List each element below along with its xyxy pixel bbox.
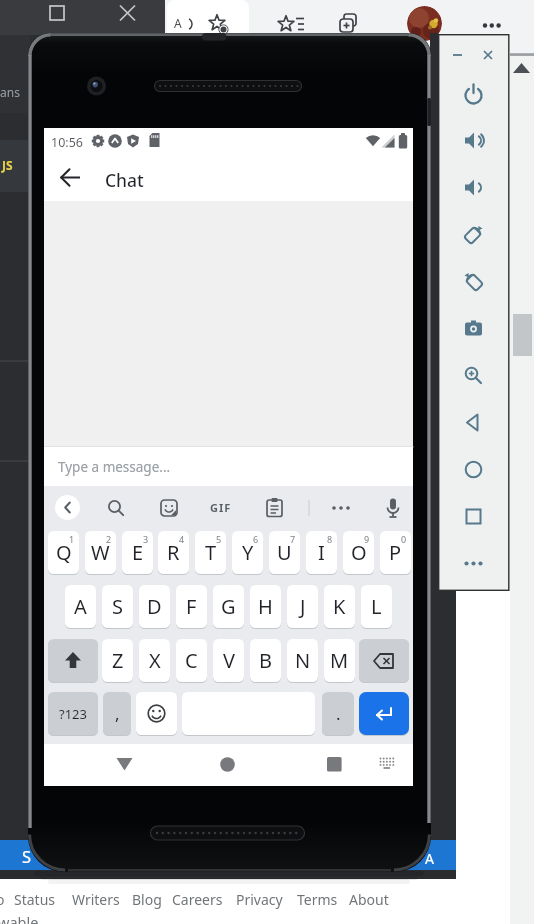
button[interactable]: Z [102, 639, 133, 682]
button[interactable] [160, 499, 178, 517]
button[interactable] [463, 553, 484, 574]
button[interactable]: M [324, 639, 355, 682]
staticText: , [115, 702, 120, 725]
button[interactable]: Q [48, 531, 79, 574]
button[interactable]: V [213, 639, 244, 682]
staticText: Y [242, 539, 254, 566]
button[interactable] [55, 495, 80, 520]
button[interactable] [480, 21, 506, 31]
button[interactable]: U [269, 531, 300, 574]
button[interactable] [463, 506, 484, 527]
button[interactable] [44, 447, 413, 486]
staticText: 0 [401, 533, 407, 545]
staticText: H [258, 593, 273, 620]
staticText: I [318, 539, 325, 566]
button[interactable] [407, 6, 442, 41]
button[interactable] [482, 49, 494, 61]
button[interactable]: H [250, 585, 281, 628]
button[interactable] [463, 318, 484, 339]
button[interactable] [359, 692, 409, 735]
button[interactable] [266, 498, 283, 517]
button[interactable]: Y [232, 531, 263, 574]
staticText: o [0, 890, 5, 909]
button[interactable] [463, 271, 484, 292]
button[interactable]: I [306, 531, 337, 574]
staticText: . [336, 702, 341, 725]
staticText: C [185, 647, 198, 674]
staticText: E [132, 539, 144, 566]
button[interactable] [107, 499, 125, 517]
staticText: G [221, 593, 236, 620]
button[interactable]: B [250, 639, 281, 682]
button[interactable] [512, 62, 531, 76]
button[interactable]: K [324, 585, 355, 628]
staticText: Privacy [236, 890, 283, 909]
button[interactable]: L [361, 585, 392, 628]
staticText: N [295, 647, 311, 674]
staticText: P [389, 539, 402, 566]
button[interactable] [463, 224, 484, 245]
button[interactable] [276, 13, 308, 39]
button[interactable]: S [102, 585, 133, 628]
staticText: Blog [132, 890, 162, 909]
staticText: 5 [216, 533, 222, 545]
button[interactable] [463, 412, 484, 433]
button[interactable]: E [122, 531, 153, 574]
button[interactable]: GIF [210, 500, 242, 516]
staticText: A [74, 593, 87, 620]
button[interactable]: R [158, 531, 189, 574]
staticText: 6 [253, 533, 259, 545]
staticText: About [349, 890, 389, 909]
staticText: J [300, 593, 306, 620]
staticText: 8 [327, 533, 333, 545]
button[interactable] [48, 639, 98, 682]
button[interactable]: T [195, 531, 226, 574]
staticText: 2 [106, 533, 112, 545]
staticText: B [259, 647, 272, 674]
button[interactable]: N [287, 639, 318, 682]
staticText: 10:56 [51, 134, 83, 151]
button[interactable] [136, 692, 177, 735]
button[interactable]: G [213, 585, 244, 628]
button[interactable]: X [139, 639, 170, 682]
button[interactable]: D [139, 585, 170, 628]
button[interactable] [116, 757, 133, 772]
button[interactable]: P [380, 531, 411, 574]
button[interactable] [327, 757, 342, 772]
staticText: wable [0, 912, 39, 924]
button[interactable] [331, 505, 351, 511]
button[interactable]: , [103, 692, 131, 735]
button[interactable] [463, 84, 484, 105]
staticText: 9 [364, 533, 370, 545]
button[interactable]: J [287, 585, 318, 628]
button[interactable]: O [343, 531, 374, 574]
button[interactable] [207, 13, 233, 39]
button[interactable] [463, 365, 484, 386]
button[interactable] [463, 459, 484, 480]
button[interactable] [385, 498, 401, 518]
button[interactable] [337, 13, 363, 39]
button[interactable]: W [85, 531, 116, 574]
button[interactable] [220, 757, 235, 772]
button[interactable] [452, 50, 464, 60]
button[interactable]: . [322, 692, 354, 735]
button[interactable] [463, 177, 484, 198]
button[interactable] [379, 757, 395, 772]
staticText: ?123 [59, 705, 87, 723]
staticText: Status [14, 890, 56, 909]
button[interactable]: C [176, 639, 207, 682]
button[interactable]: ?123 [48, 692, 98, 735]
button[interactable] [60, 167, 81, 188]
button[interactable]: F [176, 585, 207, 628]
button[interactable] [359, 639, 409, 682]
staticText: Q [56, 539, 72, 566]
staticText: V [223, 647, 235, 674]
button[interactable] [463, 130, 484, 151]
staticText: M [330, 647, 349, 674]
staticText: O [351, 539, 367, 566]
staticText: JS [2, 157, 13, 173]
staticText: Terms [297, 890, 338, 909]
button[interactable]: A [65, 585, 96, 628]
staticText: ans [0, 84, 20, 100]
